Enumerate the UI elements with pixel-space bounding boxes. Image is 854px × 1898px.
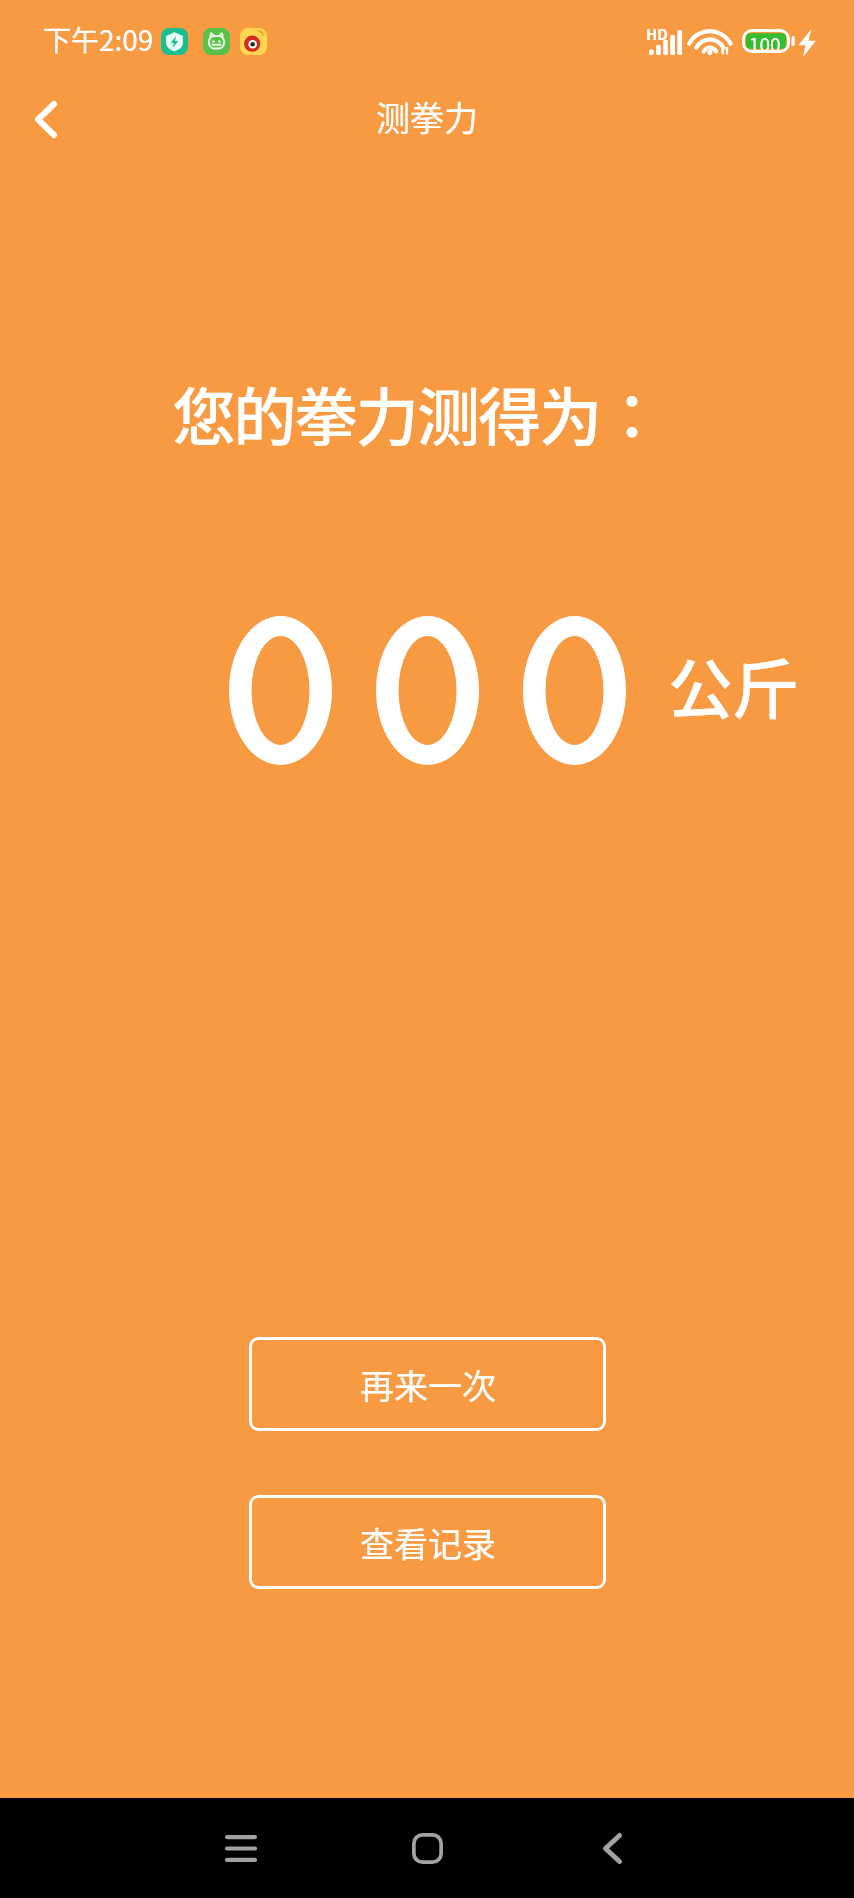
staticText: 查看记录 <box>360 1518 496 1567</box>
staticText: HD <box>646 23 669 45</box>
staticText: 再来一次 <box>360 1360 496 1409</box>
button[interactable]: Home <box>372 1798 482 1898</box>
staticText: 公斤 <box>668 638 799 732</box>
button[interactable]: 再来一次 <box>249 1337 606 1431</box>
staticText: 您的拳力测得为： <box>0 367 844 458</box>
staticText: 测拳力 <box>376 92 478 141</box>
button[interactable]: Back <box>14 87 78 151</box>
button[interactable]: Back <box>557 1798 667 1898</box>
button[interactable]: Recents <box>186 1798 296 1898</box>
button[interactable]: 查看记录 <box>249 1495 606 1589</box>
staticText: 100 <box>749 30 781 58</box>
staticText: 下午2:09 <box>43 19 154 60</box>
